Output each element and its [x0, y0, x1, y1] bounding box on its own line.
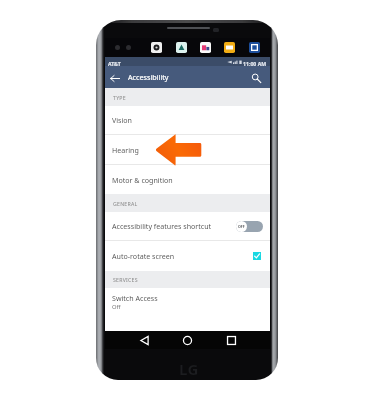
button[interactable]: OFF: [236, 221, 263, 232]
button[interactable]: Vision: [105, 106, 270, 134]
staticText: AT&T: [108, 60, 121, 67]
button[interactable]: Auto-rotate screen: [105, 241, 270, 271]
button[interactable]: Recent apps: [218, 331, 244, 349]
button[interactable]: Accessibility features shortcut: [105, 212, 270, 240]
staticText: Switch Access: [112, 293, 158, 303]
staticText: Accessibility features shortcut: [112, 221, 212, 231]
staticText: Accessibility: [128, 72, 169, 82]
button[interactable]: Motor & cognition: [105, 165, 270, 194]
staticText: SERVICES: [113, 276, 138, 283]
button[interactable]: Back: [131, 331, 157, 349]
button[interactable]: Back: [104, 68, 125, 89]
staticText: Auto-rotate screen: [112, 251, 175, 261]
staticText: Hearing: [112, 145, 139, 155]
staticText: 11:00 AM: [243, 60, 267, 67]
staticText: Off: [112, 303, 121, 311]
staticText: Motor & cognition: [112, 175, 173, 185]
staticText: GENERAL: [113, 200, 138, 207]
button[interactable]: Home: [174, 331, 200, 349]
staticText: Vision: [112, 115, 132, 125]
staticText: LG: [179, 359, 199, 379]
button[interactable]: Hearing: [105, 135, 270, 164]
staticText: OFF: [238, 224, 245, 229]
button[interactable]: Search: [246, 68, 267, 89]
staticText: TYPE: [113, 94, 126, 101]
button[interactable]: Switch Access: [105, 288, 270, 327]
button[interactable]: [251, 250, 263, 262]
